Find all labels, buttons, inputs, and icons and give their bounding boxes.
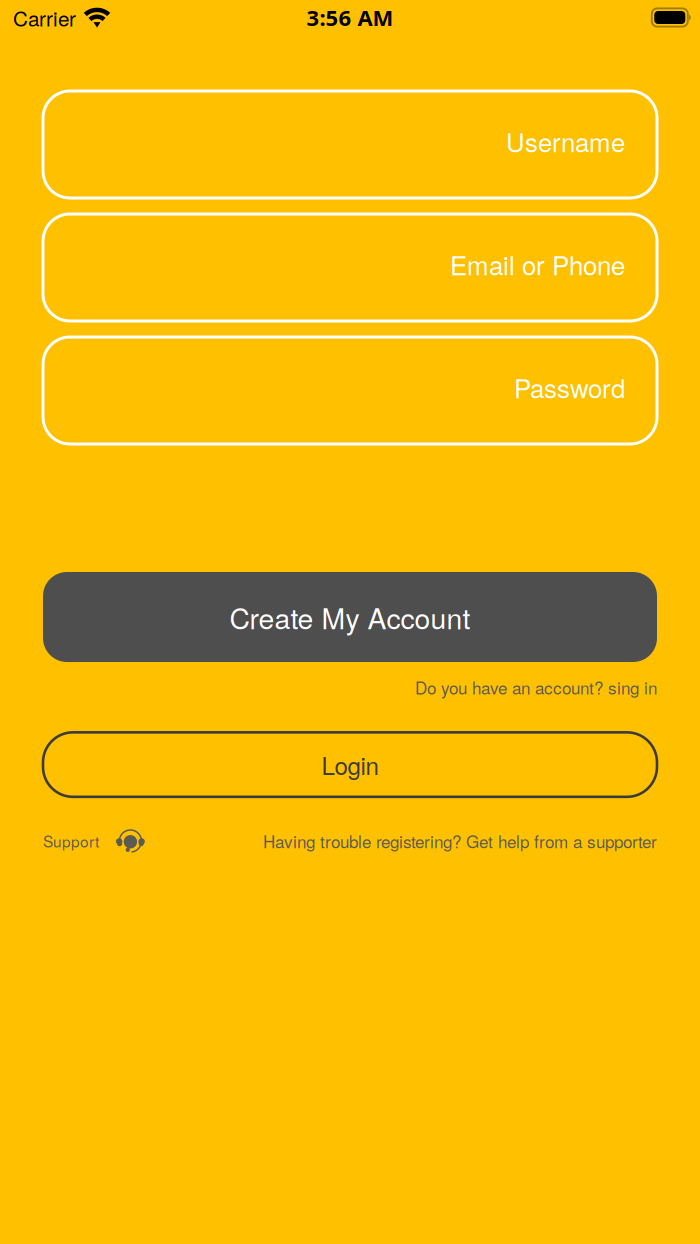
button[interactable]: Support — [43, 829, 145, 853]
button[interactable]: Username — [43, 91, 657, 198]
button[interactable]: Do you have an account? sing in — [415, 675, 657, 699]
staticText: Having trouble registering? Get help fro… — [263, 829, 657, 853]
button[interactable]: Having trouble registering? Get help fro… — [263, 829, 657, 853]
staticText: Support — [43, 830, 99, 852]
staticText: Email or Phone — [450, 245, 625, 282]
staticText: 3:56 AM — [306, 2, 393, 32]
staticText: Carrier — [13, 3, 76, 32]
button[interactable]: Email or Phone — [43, 214, 657, 321]
staticText: Username — [506, 122, 625, 159]
staticText: Password — [514, 368, 625, 405]
staticText: Login — [321, 747, 378, 782]
button[interactable]: Create My Account — [43, 572, 657, 662]
button[interactable]: Login — [43, 732, 657, 797]
button[interactable]: Password — [43, 337, 657, 444]
staticText: Do you have an account? sing in — [415, 675, 657, 699]
staticText: Create My Account — [229, 597, 470, 637]
